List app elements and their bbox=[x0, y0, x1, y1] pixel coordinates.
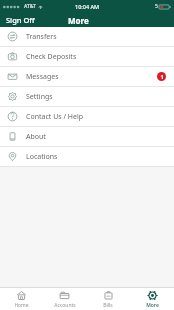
button[interactable]: Settings bbox=[0, 87, 174, 106]
staticText: Locations bbox=[26, 152, 58, 162]
staticText: AT&T bbox=[24, 3, 36, 10]
button[interactable]: Locations bbox=[0, 147, 174, 166]
button[interactable]: Home bbox=[0, 288, 43, 310]
button[interactable]: Check Deposits bbox=[0, 47, 174, 66]
staticText: Accounts bbox=[54, 302, 76, 308]
staticText: About bbox=[26, 132, 46, 142]
staticText: More bbox=[146, 302, 159, 308]
staticText: 1 bbox=[160, 73, 164, 80]
staticText: Bills bbox=[103, 302, 113, 308]
button[interactable]: Transfers bbox=[0, 27, 174, 46]
staticText: Check Deposits bbox=[26, 52, 77, 62]
button[interactable]: Sign Off bbox=[0, 13, 41, 27]
button[interactable]: Messages bbox=[0, 67, 174, 86]
button[interactable]: Bills bbox=[86, 288, 130, 310]
staticText: Transfers bbox=[26, 32, 57, 42]
button[interactable]: More bbox=[130, 288, 174, 310]
staticText: 10:04 AM bbox=[75, 3, 100, 10]
button[interactable]: About bbox=[0, 127, 174, 146]
staticText: Contact Us / Help bbox=[26, 112, 84, 122]
staticText: Settings bbox=[26, 92, 53, 102]
button[interactable]: Contact Us / Help bbox=[0, 107, 174, 126]
button[interactable]: Accounts bbox=[43, 288, 86, 310]
staticText: Home bbox=[14, 302, 29, 308]
staticText: 5 bbox=[155, 3, 158, 10]
staticText: More bbox=[68, 15, 89, 26]
staticText: Sign Off bbox=[6, 15, 35, 25]
staticText: Messages bbox=[26, 72, 59, 82]
